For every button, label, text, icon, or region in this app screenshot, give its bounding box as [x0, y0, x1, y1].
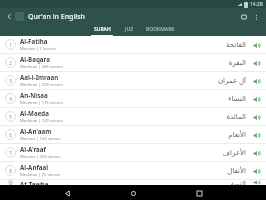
button[interactable]: Play Al-Anfaal [251, 166, 261, 176]
staticText: Al-Fatiha [20, 37, 48, 45]
button[interactable]: More options [250, 11, 262, 23]
staticText: الفاتحة [226, 41, 246, 49]
staticText: Al-Baqara [20, 55, 50, 63]
button[interactable]: JUZ [119, 25, 140, 36]
button[interactable]: Play Aal-i-Imraan [251, 76, 261, 86]
button[interactable]: 6 [0, 126, 266, 143]
staticText: Al-An'aam [20, 127, 52, 135]
staticText: 9 [9, 180, 12, 185]
staticText: JUZ [125, 26, 134, 33]
staticText: 6 [9, 132, 12, 138]
staticText: An-Nisaa [20, 91, 48, 99]
button[interactable]: Play Al-Maeda [251, 112, 261, 122]
staticText: Meccan | 7 verses [20, 46, 56, 52]
staticText: 1 [9, 42, 12, 48]
button[interactable]: 3 [0, 72, 266, 89]
button[interactable]: 4 [0, 90, 266, 107]
button[interactable]: Back [4, 11, 15, 22]
button[interactable]: 7 [0, 144, 266, 161]
staticText: 5 [9, 114, 12, 120]
staticText: الأنفال [227, 167, 246, 175]
staticText: الأنعام [228, 131, 246, 139]
staticText: الأعراف [222, 149, 246, 157]
staticText: 3 [9, 78, 12, 84]
staticText: At-Tawba [20, 180, 49, 185]
button[interactable]: Back [60, 186, 74, 200]
staticText: Medinan | 120 verses [20, 118, 63, 124]
button[interactable]: Home [126, 186, 140, 200]
staticText: المائدة [226, 113, 246, 121]
staticText: BOOKMARK [146, 26, 175, 33]
staticText: 8 [9, 168, 12, 174]
button[interactable]: BOOKMARK [140, 25, 181, 36]
button[interactable]: Play Al-A'raaf [251, 148, 261, 158]
button[interactable]: Play Al-Fatiha [251, 40, 261, 50]
staticText: النساء [228, 95, 246, 103]
button[interactable]: 9 [0, 180, 266, 185]
button[interactable]: 5 [0, 108, 266, 125]
staticText: 2 [9, 60, 12, 66]
button[interactable]: Play An-Nisaa [251, 94, 261, 104]
staticText: البقرة [228, 59, 246, 67]
staticText: Medinan | 176 verses [20, 100, 63, 106]
staticText: Medinan | 75 verses [20, 172, 61, 178]
staticText: Al-Anfaal [20, 163, 49, 171]
staticText: Medinan | 200 verses [20, 82, 63, 88]
staticText: Medinan | 286 verses [20, 64, 63, 70]
staticText: Al-Maeda [20, 109, 49, 117]
staticText: Meccan | 206 verses [20, 154, 61, 160]
button[interactable]: 2 [0, 54, 266, 71]
staticText: 7 [9, 150, 12, 156]
button[interactable]: Play Al-An'aam [251, 130, 261, 140]
staticText: آل عمران [217, 76, 246, 86]
staticText: Meccan | 165 verses [20, 136, 61, 142]
button[interactable]: 8 [0, 162, 266, 179]
button[interactable]: Play Al-Baqara [251, 58, 261, 68]
staticText: Al-A'raaf [20, 145, 46, 153]
staticText: SURAH [94, 26, 111, 33]
button[interactable]: SURAH [85, 25, 119, 36]
staticText: 14:28 [250, 1, 263, 8]
staticText: Qur'an in English [28, 12, 86, 22]
staticText: Aal-i-Imraan [20, 73, 59, 81]
staticText: 4 [9, 96, 12, 102]
button[interactable]: Play At-Tawba [251, 180, 261, 185]
button[interactable]: 1 [0, 36, 266, 53]
staticText: التوبة [230, 180, 246, 185]
button[interactable]: Recent apps [192, 186, 206, 200]
button[interactable]: Rotate screen [238, 11, 250, 23]
